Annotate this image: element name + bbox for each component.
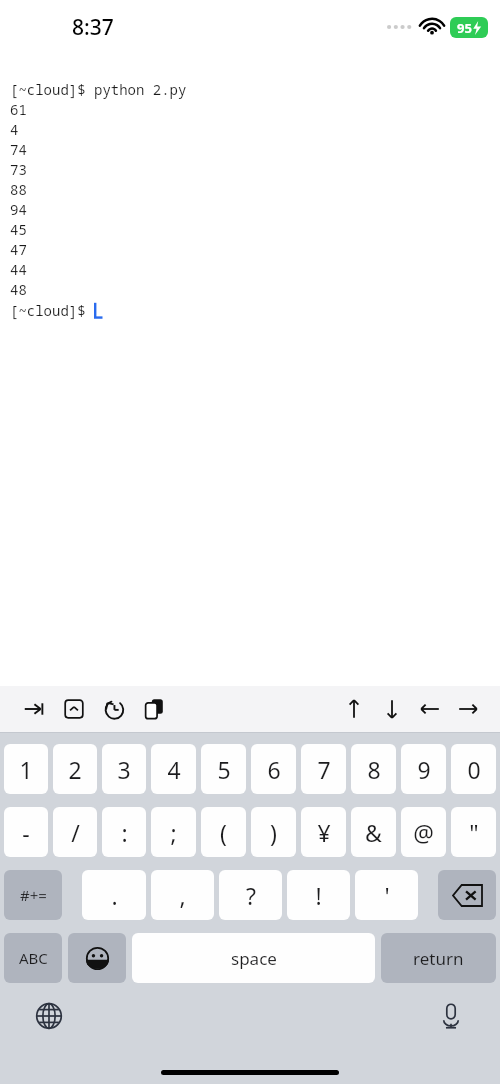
- staticText: ;: [170, 817, 177, 848]
- staticText: 4: [167, 754, 181, 785]
- button[interactable]: Control: [60, 695, 88, 723]
- staticText: 47: [10, 240, 27, 260]
- button[interactable]: Dictation: [430, 995, 472, 1037]
- staticText: ,: [179, 880, 186, 911]
- button[interactable]: Paste: [140, 695, 168, 723]
- button[interactable]: -: [4, 807, 48, 857]
- button[interactable]: ;: [151, 807, 196, 857]
- button[interactable]: !: [287, 870, 350, 920]
- staticText: [~cloud]$ python 2.py: [10, 80, 187, 100]
- staticText: 3: [117, 754, 131, 785]
- button[interactable]: ABC: [4, 933, 62, 983]
- button[interactable]: History: [100, 695, 128, 723]
- staticText: ABC: [19, 948, 48, 968]
- button[interactable]: return: [381, 933, 496, 983]
- staticText: 5: [217, 754, 231, 785]
- button[interactable]: ,: [151, 870, 214, 920]
- staticText: ¥: [317, 817, 331, 848]
- staticText: #+=: [20, 885, 47, 905]
- staticText: [~cloud]$: [10, 301, 94, 320]
- button[interactable]: ?: [219, 870, 282, 920]
- staticText: 73: [10, 160, 27, 180]
- button[interactable]: 1: [4, 744, 48, 794]
- button[interactable]: Arrow down: [378, 695, 406, 723]
- staticText: /: [71, 817, 80, 848]
- staticText: 8:37: [72, 13, 114, 42]
- staticText: !: [315, 880, 322, 911]
- staticText: &: [365, 817, 382, 848]
- staticText: 48: [10, 280, 27, 300]
- staticText: (: [220, 817, 227, 848]
- button[interactable]: Delete: [438, 870, 496, 920]
- staticText: 94: [10, 200, 27, 220]
- staticText: return: [413, 947, 464, 970]
- button[interactable]: 4: [151, 744, 196, 794]
- button[interactable]: &: [351, 807, 396, 857]
- button[interactable]: 7: [301, 744, 346, 794]
- button[interactable]: Arrow left: [416, 695, 444, 723]
- staticText: 44: [10, 260, 27, 280]
- button[interactable]: ": [451, 807, 496, 857]
- button[interactable]: ¥: [301, 807, 346, 857]
- staticText: ): [270, 817, 277, 848]
- button[interactable]: 3: [102, 744, 146, 794]
- staticText: 1: [19, 754, 33, 785]
- button[interactable]: Emoji: [68, 933, 126, 983]
- staticText: 95: [457, 19, 472, 37]
- button[interactable]: ': [355, 870, 418, 920]
- staticText: 88: [10, 180, 27, 200]
- staticText: 9: [417, 754, 431, 785]
- button[interactable]: Arrow up: [340, 695, 368, 723]
- button[interactable]: /: [53, 807, 97, 857]
- staticText: .: [111, 880, 118, 911]
- staticText: 2: [68, 754, 82, 785]
- button[interactable]: 9: [401, 744, 446, 794]
- button[interactable]: 0: [451, 744, 496, 794]
- staticText: @: [413, 817, 434, 848]
- staticText: 45: [10, 220, 27, 240]
- staticText: -: [22, 817, 30, 848]
- staticText: 61: [10, 100, 27, 120]
- staticText: ?: [246, 880, 256, 911]
- button[interactable]: Change keyboard: [28, 995, 70, 1037]
- button[interactable]: (: [201, 807, 246, 857]
- button[interactable]: .: [82, 870, 146, 920]
- staticText: 7: [317, 754, 331, 785]
- button[interactable]: ): [251, 807, 296, 857]
- staticText: :: [121, 817, 128, 848]
- button[interactable]: Tab: [20, 695, 48, 723]
- staticText: space: [231, 947, 277, 970]
- button[interactable]: 2: [53, 744, 97, 794]
- button[interactable]: space: [132, 933, 375, 983]
- staticText: 74: [10, 140, 27, 160]
- button[interactable]: Arrow right: [454, 695, 482, 723]
- button[interactable]: :: [102, 807, 146, 857]
- staticText: 8: [367, 754, 381, 785]
- staticText: ": [469, 817, 479, 848]
- button[interactable]: #+=: [4, 870, 62, 920]
- staticText: 0: [467, 754, 481, 785]
- button[interactable]: 8: [351, 744, 396, 794]
- staticText: 6: [267, 754, 281, 785]
- button[interactable]: @: [401, 807, 446, 857]
- staticText: 4: [10, 120, 19, 140]
- staticText: ': [384, 880, 390, 911]
- button[interactable]: 6: [251, 744, 296, 794]
- button[interactable]: 5: [201, 744, 246, 794]
